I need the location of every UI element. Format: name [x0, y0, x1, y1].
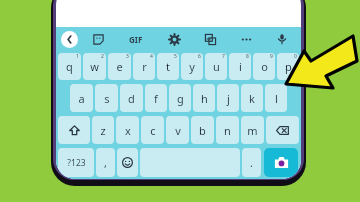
button[interactable]: r — [133, 53, 155, 80]
button[interactable]: GIF — [123, 28, 149, 50]
staticText: 2 — [101, 53, 104, 60]
staticText: t — [166, 59, 170, 74]
button[interactable]: m — [241, 116, 264, 144]
staticText: 8 — [246, 53, 249, 60]
staticText: 6 — [198, 53, 201, 60]
staticText: b — [199, 123, 206, 138]
staticText: k — [249, 91, 255, 106]
button[interactable]: Backspace — [266, 116, 299, 144]
staticText: l — [275, 91, 278, 106]
staticText: c — [150, 123, 156, 138]
staticText: m — [247, 123, 258, 138]
staticText: GIF — [129, 34, 143, 45]
button[interactable]: s — [95, 84, 118, 112]
button[interactable]: l — [265, 84, 287, 112]
staticText: r — [142, 59, 147, 74]
button[interactable]: ?123 — [58, 148, 94, 177]
staticText: 1 — [76, 53, 79, 60]
staticText: . — [250, 155, 253, 170]
button[interactable]: Back — [61, 31, 78, 48]
button[interactable]: e — [108, 53, 131, 80]
button[interactable]: y — [181, 53, 203, 80]
button[interactable]: , — [96, 148, 115, 177]
button[interactable]: Voice input — [271, 28, 293, 50]
button[interactable]: b — [191, 116, 214, 144]
button[interactable]: Shift — [58, 116, 90, 144]
staticText: z — [100, 123, 106, 138]
button[interactable]: v — [166, 116, 189, 144]
staticText: 4 — [150, 53, 153, 60]
button[interactable]: c — [141, 116, 164, 144]
button[interactable]: j — [217, 84, 239, 112]
button[interactable]: Stickers — [87, 28, 109, 50]
button[interactable]: a — [70, 84, 93, 112]
staticText: ?123 — [67, 157, 86, 169]
button[interactable]: f — [145, 84, 167, 112]
staticText: h — [201, 91, 208, 106]
staticText: v — [175, 123, 181, 138]
button[interactable]: i — [229, 53, 251, 80]
staticText: n — [224, 123, 231, 138]
staticText: u — [213, 59, 220, 74]
button[interactable]: More options — [235, 28, 257, 50]
staticText: x — [125, 123, 131, 138]
button[interactable]: o — [253, 53, 275, 80]
staticText: d — [128, 91, 135, 106]
button[interactable]: h — [193, 84, 215, 112]
button[interactable] — [140, 148, 240, 177]
staticText: i — [239, 59, 242, 74]
button[interactable]: x — [116, 116, 139, 144]
button[interactable]: p — [277, 53, 299, 80]
button[interactable]: . — [242, 148, 261, 177]
staticText: y — [189, 59, 195, 74]
staticText: 9 — [270, 53, 273, 60]
button[interactable]: Settings — [163, 28, 185, 50]
staticText: q — [66, 59, 73, 74]
staticText: j — [227, 91, 230, 106]
staticText: w — [90, 59, 99, 74]
button[interactable]: q — [58, 53, 81, 80]
button[interactable]: n — [216, 116, 239, 144]
staticText: e — [116, 59, 123, 74]
button[interactable]: Translate — [199, 28, 221, 50]
button[interactable]: w — [83, 53, 106, 80]
staticText: f — [154, 91, 158, 106]
button[interactable]: g — [169, 84, 191, 112]
staticText: s — [104, 91, 110, 106]
staticText: 5 — [174, 53, 177, 60]
button[interactable]: z — [92, 116, 114, 144]
staticText: 3 — [126, 53, 129, 60]
staticText: a — [78, 91, 85, 106]
button[interactable]: Emoji — [117, 148, 138, 177]
staticText: 0 — [294, 53, 297, 60]
button[interactable]: k — [241, 84, 263, 112]
staticText: p — [285, 59, 292, 74]
button[interactable]: t — [157, 53, 179, 80]
staticText: o — [261, 59, 268, 74]
button[interactable]: Camera — [264, 148, 298, 177]
staticText: g — [177, 91, 184, 106]
staticText: 7 — [222, 53, 225, 60]
staticText: , — [104, 155, 107, 170]
button[interactable]: d — [120, 84, 143, 112]
button[interactable]: u — [205, 53, 227, 80]
